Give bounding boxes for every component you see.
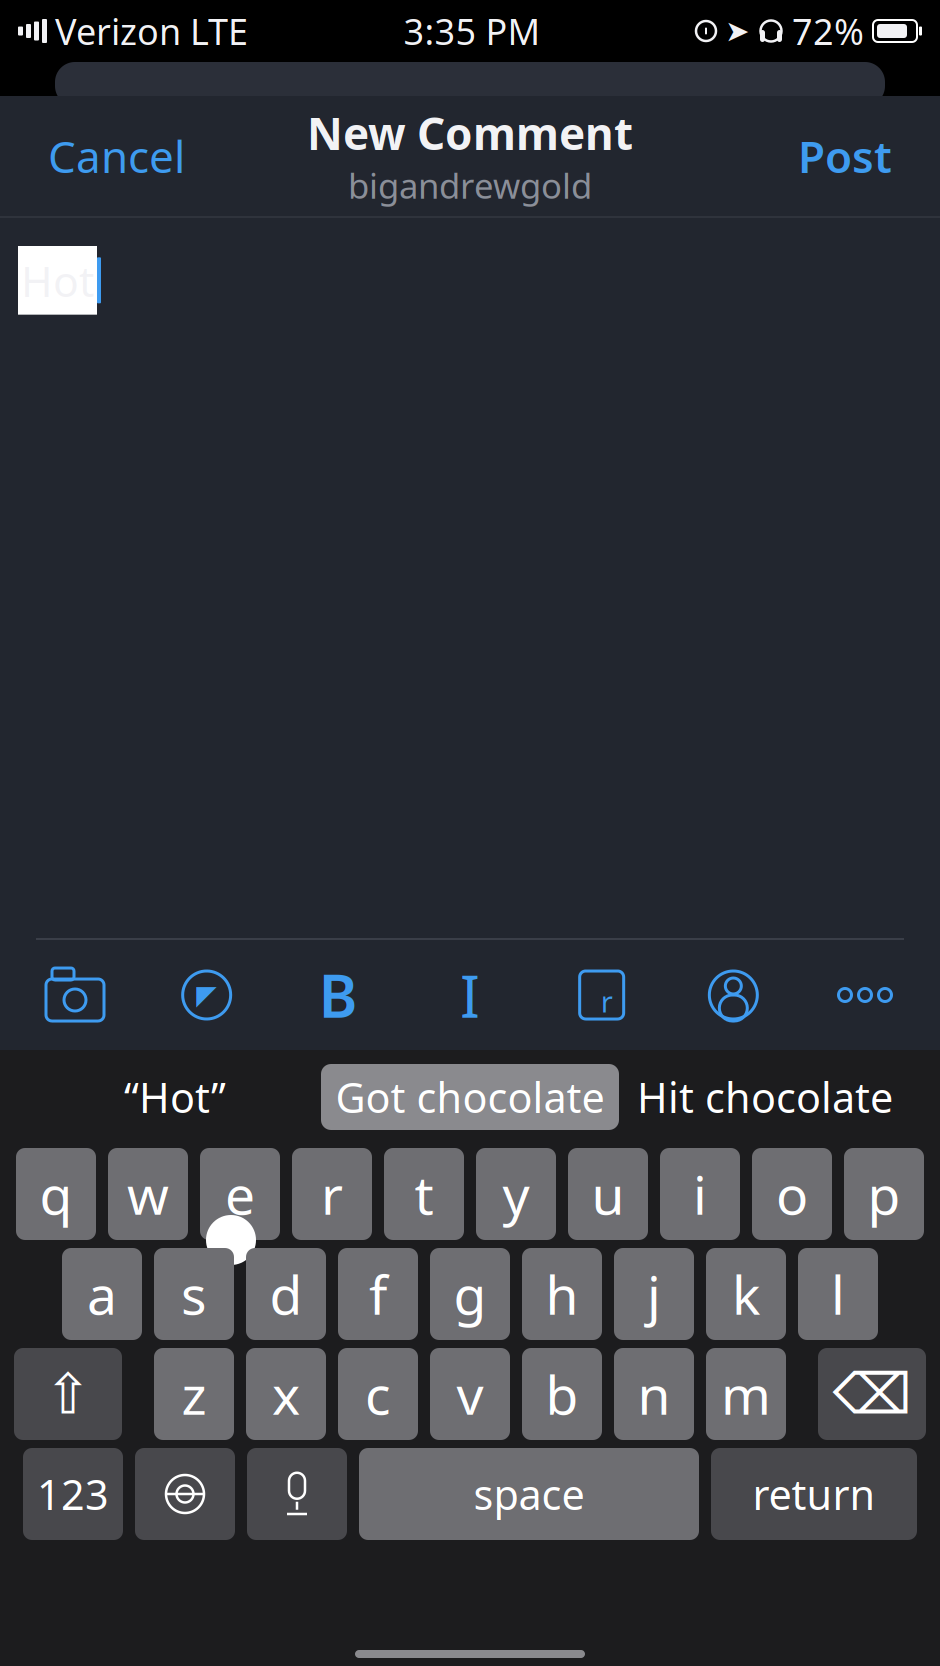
staticText: “Hot” xyxy=(124,1070,226,1124)
staticText: ➤ xyxy=(725,14,750,48)
staticText: j xyxy=(647,1259,661,1329)
button[interactable]: o xyxy=(752,1148,832,1240)
button[interactable]: g xyxy=(430,1248,510,1340)
button[interactable]: Switch keyboard xyxy=(135,1448,235,1540)
staticText: s xyxy=(181,1259,207,1329)
staticText: f xyxy=(369,1259,387,1329)
staticText: Post xyxy=(798,127,892,185)
staticText: x xyxy=(272,1359,300,1429)
staticText: ⇧ xyxy=(44,1362,91,1426)
staticText: Got chocolate xyxy=(335,1070,604,1124)
staticText: v xyxy=(456,1359,483,1429)
button[interactable]: j xyxy=(614,1248,694,1340)
staticText: o xyxy=(776,1159,808,1229)
button[interactable]: Shift xyxy=(14,1348,122,1440)
button[interactable]: d xyxy=(246,1248,326,1340)
button[interactable]: m xyxy=(706,1348,786,1440)
button[interactable]: Add tag xyxy=(571,966,633,1024)
staticText: q xyxy=(39,1159,72,1229)
staticText: m xyxy=(721,1359,771,1429)
staticText: c xyxy=(365,1359,391,1429)
staticText: ⌫ xyxy=(832,1362,911,1426)
staticText: New Comment xyxy=(307,104,633,162)
button[interactable]: p xyxy=(844,1148,924,1240)
staticText: h xyxy=(545,1259,578,1329)
staticText: return xyxy=(752,1467,875,1521)
button[interactable]: Got chocolate xyxy=(321,1064,619,1130)
staticText: 3:35 PM xyxy=(403,7,540,55)
staticText: p xyxy=(867,1159,900,1229)
button[interactable]: y xyxy=(476,1148,556,1240)
staticText: u xyxy=(591,1159,624,1229)
staticText: I xyxy=(460,956,480,1034)
button[interactable]: Hit chocolate xyxy=(619,1064,911,1130)
button[interactable]: x xyxy=(246,1348,326,1440)
staticText: k xyxy=(732,1259,760,1329)
staticText: d xyxy=(269,1259,302,1329)
staticText: w xyxy=(127,1159,169,1229)
staticText: 123 xyxy=(37,1467,109,1521)
staticText: b xyxy=(545,1359,578,1429)
button[interactable]: space xyxy=(359,1448,699,1540)
button[interactable]: z xyxy=(154,1348,234,1440)
staticText: B xyxy=(319,956,358,1034)
button[interactable]: Post xyxy=(776,111,914,201)
staticText: 72% xyxy=(792,7,864,55)
staticText: ◤ xyxy=(196,980,217,1010)
button[interactable]: f xyxy=(338,1248,418,1340)
staticText: e xyxy=(225,1159,255,1229)
staticText: Hot xyxy=(21,252,94,309)
staticText: r xyxy=(321,1159,343,1229)
button[interactable]: e xyxy=(200,1148,280,1240)
staticText: Cancel xyxy=(48,127,185,185)
button[interactable]: More options xyxy=(834,966,896,1024)
button[interactable]: return xyxy=(711,1448,917,1540)
button[interactable]: i xyxy=(660,1148,740,1240)
button[interactable]: t xyxy=(384,1148,464,1240)
button[interactable]: w xyxy=(108,1148,188,1240)
button[interactable]: n xyxy=(614,1348,694,1440)
staticText: i xyxy=(693,1159,707,1229)
button[interactable]: Delete xyxy=(818,1348,926,1440)
staticText: y xyxy=(502,1159,529,1229)
button[interactable]: Insert link xyxy=(176,966,238,1024)
button[interactable]: Dictate xyxy=(247,1448,347,1540)
button[interactable]: I xyxy=(439,966,501,1024)
button[interactable]: Mention user xyxy=(702,966,764,1024)
button[interactable]: h xyxy=(522,1248,602,1340)
button[interactable]: s xyxy=(154,1248,234,1340)
staticText: t xyxy=(414,1159,433,1229)
button[interactable]: “Hot” xyxy=(29,1064,321,1130)
button[interactable]: r xyxy=(292,1148,372,1240)
button[interactable]: 123 xyxy=(23,1448,123,1540)
button[interactable]: c xyxy=(338,1348,418,1440)
button[interactable]: Add photo xyxy=(44,966,106,1024)
button[interactable]: k xyxy=(706,1248,786,1340)
staticText: Hit chocolate xyxy=(637,1070,893,1124)
button[interactable]: B xyxy=(307,966,369,1024)
staticText: n xyxy=(637,1359,670,1429)
staticText: l xyxy=(831,1259,845,1329)
button[interactable]: a xyxy=(62,1248,142,1340)
button[interactable]: v xyxy=(430,1348,510,1440)
staticText: Verizon LTE xyxy=(55,7,248,55)
staticText: bigandrewgold xyxy=(348,162,592,208)
staticText: g xyxy=(453,1259,486,1329)
staticText: space xyxy=(473,1467,584,1521)
staticText: z xyxy=(181,1359,206,1429)
button[interactable]: b xyxy=(522,1348,602,1440)
staticText: a xyxy=(87,1259,117,1329)
button[interactable]: q xyxy=(16,1148,96,1240)
staticText: r xyxy=(601,981,613,1020)
button[interactable]: l xyxy=(798,1248,878,1340)
button[interactable]: u xyxy=(568,1148,648,1240)
button[interactable]: Cancel xyxy=(26,111,207,201)
